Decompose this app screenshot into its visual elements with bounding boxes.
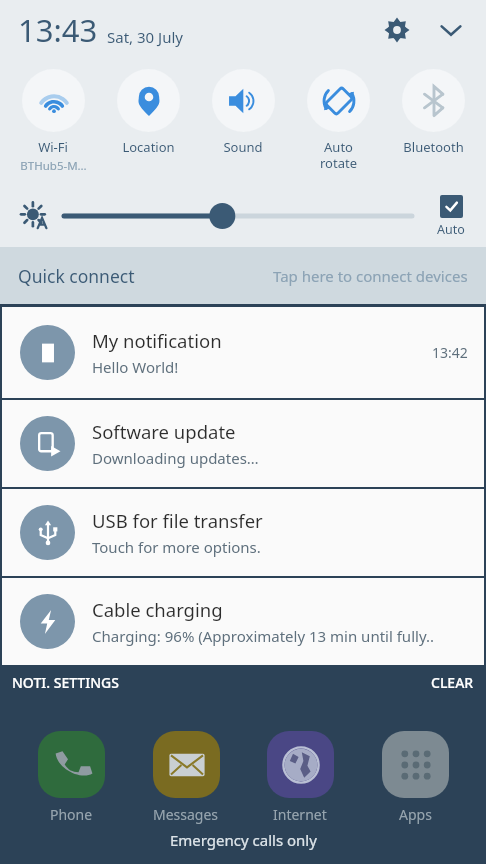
button[interactable]: USB for file transfer [2, 489, 484, 576]
button[interactable]: NOTI. SETTINGS [10, 669, 121, 696]
button[interactable]: Sound [197, 60, 289, 185]
staticText: BTHub5-M… [20, 158, 87, 174]
staticText: 13:42 [432, 343, 468, 362]
staticText: My notification [92, 328, 222, 353]
staticText: Cable charging [92, 597, 223, 622]
staticText: Location [122, 138, 175, 156]
button[interactable]: Auto [422, 195, 480, 238]
button[interactable] [64, 198, 412, 234]
button[interactable]: Cable charging [2, 578, 484, 665]
button[interactable]: Wi-Fi [7, 60, 99, 185]
staticText: Tap here to connect devices [273, 266, 468, 286]
staticText: Auto [437, 221, 465, 238]
staticText: Internet [273, 805, 327, 824]
staticText: USB for file transfer [92, 508, 263, 533]
staticText: Sound [223, 138, 263, 156]
staticText: NOTI. SETTINGS [12, 673, 119, 692]
button[interactable]: Phone [19, 731, 123, 824]
staticText: 13:43 [18, 9, 98, 51]
button[interactable]: Quick connect [0, 247, 486, 304]
button[interactable]: CLEAR [429, 669, 476, 696]
staticText: Downloading updates… [92, 448, 259, 468]
staticText: Phone [50, 805, 93, 824]
staticText: Emergency calls only [170, 830, 317, 850]
button[interactable]: Auto rotate [292, 60, 384, 185]
button[interactable]: Collapse [424, 3, 478, 57]
button[interactable]: Messages [134, 731, 238, 824]
staticText: Auto rotate [320, 138, 357, 171]
staticText: Hello World! [92, 357, 179, 377]
staticText: Touch for more options. [92, 537, 261, 557]
staticText: Wi-Fi [38, 138, 68, 156]
button[interactable]: Auto brightness [14, 196, 54, 236]
button[interactable]: Software update [2, 400, 484, 487]
staticText: CLEAR [431, 673, 474, 692]
staticText: Quick connect [18, 264, 135, 288]
button[interactable]: Bluetooth [387, 60, 479, 185]
button[interactable]: My notification [2, 307, 484, 398]
button[interactable]: Internet [248, 731, 352, 824]
staticText: Bluetooth [403, 138, 464, 156]
staticText: Charging: 96% (Approximately 13 min unti… [92, 626, 434, 646]
staticText: Messages [153, 805, 219, 824]
button[interactable]: Apps [363, 731, 467, 824]
staticText: Software update [92, 419, 236, 444]
button[interactable]: Location [102, 60, 194, 185]
staticText: Apps [399, 805, 432, 824]
button[interactable]: Settings [370, 3, 424, 57]
staticText: Sat, 30 July [107, 27, 183, 47]
